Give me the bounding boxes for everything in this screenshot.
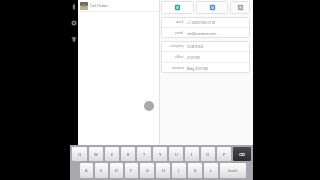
staticText: CONTOSO — [187, 44, 204, 49]
staticText: G — [146, 168, 149, 173]
button[interactable]: Notes — [196, 1, 228, 14]
staticText: O — [206, 152, 210, 157]
button[interactable]: P — [217, 147, 231, 161]
staticText: ⌫ — [239, 152, 245, 157]
staticText: Bldg 31/5180 — [187, 66, 209, 71]
button[interactable]: Call — [69, 2, 78, 11]
staticText: W — [94, 152, 98, 157]
button[interactable]: email — [161, 28, 250, 38]
button[interactable]: L — [204, 163, 218, 178]
button[interactable]: E — [105, 147, 119, 161]
button[interactable]: Search — [220, 163, 246, 178]
staticText: company — [170, 44, 184, 48]
button[interactable]: Y — [153, 147, 167, 161]
staticText: P — [223, 152, 226, 157]
button[interactable]: work — [161, 17, 250, 27]
staticText: Y — [159, 152, 162, 157]
staticText: A — [85, 168, 88, 173]
staticText: location — [172, 66, 184, 70]
button[interactable]: Delete — [69, 34, 78, 43]
staticText: Search — [228, 169, 238, 173]
staticText: H — [162, 168, 165, 173]
button[interactable]: location — [161, 63, 250, 73]
button[interactable]: R — [121, 147, 135, 161]
button[interactable]: Carl Hoden — [78, 0, 159, 11]
staticText: F — [130, 168, 133, 173]
button[interactable]: company — [161, 41, 250, 51]
button[interactable]: O — [201, 147, 215, 161]
button[interactable]: More — [230, 1, 250, 14]
button[interactable]: F — [125, 163, 138, 178]
button[interactable]: ⌫ — [233, 147, 251, 161]
button[interactable]: T — [137, 147, 151, 161]
staticText: 31/5180 — [187, 55, 200, 60]
staticText: Q — [78, 152, 82, 157]
staticText: E — [111, 152, 114, 157]
staticText: office — [175, 55, 184, 59]
staticText: work — [176, 20, 184, 24]
staticText: +1 (405) 555-0118 — [187, 20, 216, 25]
button[interactable]: W — [89, 147, 103, 161]
button[interactable]: Contact card — [161, 1, 194, 14]
button[interactable]: J — [172, 163, 186, 178]
staticText: K — [194, 168, 197, 173]
staticText: L — [210, 168, 213, 173]
staticText: email — [175, 31, 184, 35]
staticText: D — [115, 168, 118, 173]
staticText: J — [178, 168, 180, 173]
staticText: carl@contoso.com — [187, 31, 217, 36]
button[interactable]: H — [156, 163, 170, 178]
button[interactable]: D — [110, 163, 123, 178]
button[interactable]: Settings — [69, 18, 78, 27]
staticText: I — [191, 152, 193, 157]
button[interactable]: K — [188, 163, 202, 178]
staticText: R — [127, 152, 130, 157]
button[interactable]: S — [95, 163, 108, 178]
staticText: Carl Hoden — [90, 3, 108, 8]
button[interactable]: I — [185, 147, 199, 161]
button[interactable]: Q — [72, 147, 87, 161]
button[interactable]: G — [140, 163, 154, 178]
staticText: S — [100, 168, 103, 173]
button[interactable]: A — [80, 163, 93, 178]
staticText: U — [175, 152, 178, 157]
staticText: T — [143, 152, 146, 157]
button[interactable]: U — [169, 147, 183, 161]
button[interactable]: office — [161, 52, 250, 62]
